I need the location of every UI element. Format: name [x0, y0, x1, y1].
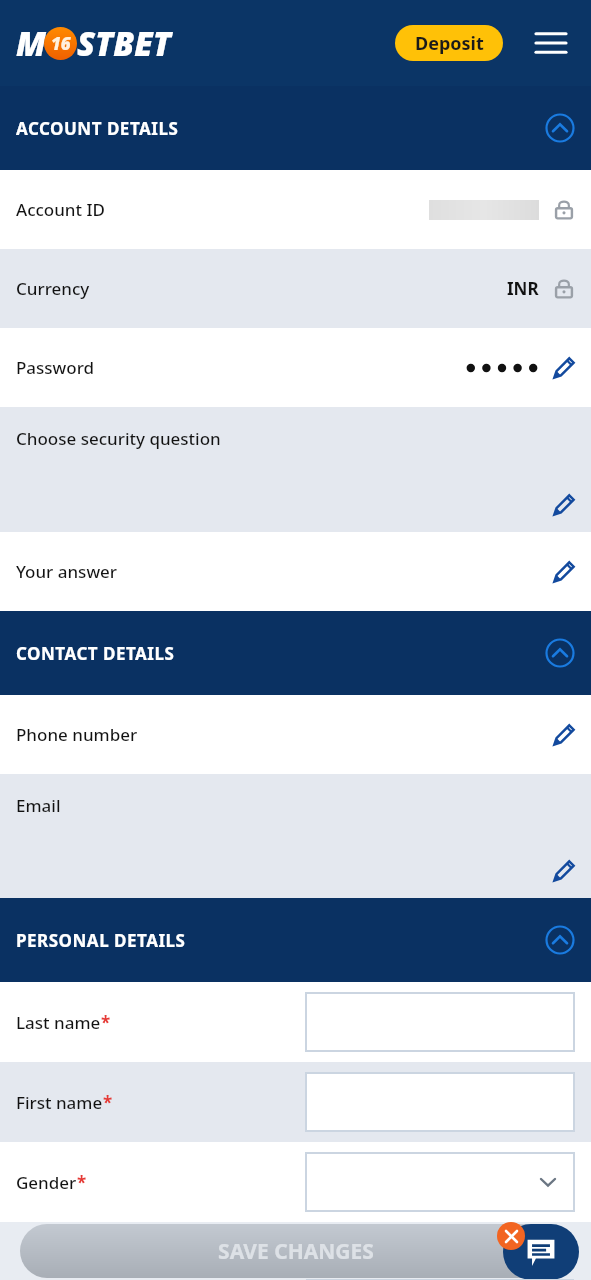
staticText: Account ID: [16, 198, 105, 221]
button[interactable]: [306, 1153, 574, 1211]
staticText: Phone number: [16, 723, 138, 746]
staticText: *: [77, 1171, 87, 1194]
staticText: STBET: [77, 21, 171, 66]
staticText: SAVE CHANGES: [218, 1237, 374, 1266]
button[interactable]: Gender: [0, 1142, 591, 1222]
button[interactable]: Open chat: [503, 1224, 579, 1280]
button[interactable]: [306, 1073, 574, 1131]
button[interactable]: Collapse PERSONAL DETAILS: [545, 925, 575, 955]
staticText: INR: [507, 277, 539, 300]
button[interactable]: Collapse CONTACT DETAILS: [545, 638, 575, 668]
button[interactable]: SAVE CHANGES: [20, 1224, 571, 1278]
button[interactable]: Phone number: [0, 695, 591, 774]
staticText: PERSONAL DETAILS: [16, 929, 186, 952]
staticText: Your answer: [16, 560, 118, 583]
button[interactable]: Currency: [0, 249, 591, 328]
button[interactable]: Choose security question: [0, 407, 591, 532]
staticText: CONTACT DETAILS: [16, 642, 175, 665]
staticText: Deposit: [415, 31, 484, 56]
staticText: First name: [16, 1091, 103, 1114]
button[interactable]: Account ID: [0, 170, 591, 249]
button[interactable]: Email: [0, 774, 591, 898]
staticText: Email: [16, 794, 61, 817]
staticText: ACCOUNT DETAILS: [16, 117, 179, 140]
staticText: M: [16, 21, 46, 66]
other: Edit Email: [553, 860, 575, 882]
other: Edit Choose security question: [553, 494, 575, 516]
staticText: Currency: [16, 277, 90, 300]
staticText: Password: [16, 356, 95, 379]
other: Edit phone number: [553, 724, 575, 746]
button[interactable]: Last name: [0, 982, 591, 1062]
button[interactable]: Your answer: [0, 532, 591, 611]
other: Edit password: [553, 357, 575, 379]
button[interactable]: Password: [0, 328, 591, 407]
staticText: *: [103, 1091, 113, 1114]
button[interactable]: Deposit: [395, 25, 503, 61]
button[interactable]: Collapse ACCOUNT DETAILS: [545, 113, 575, 143]
button[interactable]: CONTACT DETAILS: [0, 611, 591, 695]
button[interactable]: Close chat: [497, 1222, 525, 1250]
button[interactable]: Menu: [529, 21, 573, 65]
button[interactable]: First name: [0, 1062, 591, 1142]
button[interactable]: [306, 993, 574, 1051]
button[interactable]: PERSONAL DETAILS: [0, 898, 591, 982]
button[interactable]: Mostbet logo: [16, 21, 173, 66]
staticText: Gender: [16, 1171, 77, 1194]
button[interactable]: ACCOUNT DETAILS: [0, 86, 591, 170]
staticText: Choose security question: [16, 427, 221, 450]
staticText: *: [101, 1011, 111, 1034]
other: Edit your answer: [553, 561, 575, 583]
staticText: Last name: [16, 1011, 101, 1034]
staticText: 16: [51, 32, 71, 55]
